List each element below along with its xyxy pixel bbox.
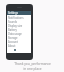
staticText: Sounds: [8, 20, 18, 24]
staticText: Data usage: [8, 32, 22, 36]
button[interactable]: Sounds: [7, 20, 31, 24]
button[interactable]: About: [7, 44, 31, 48]
button[interactable]: Storage: [7, 36, 31, 40]
staticText: in one place: [23, 67, 42, 71]
staticText: Account: [8, 40, 18, 44]
button[interactable]: Display size: [7, 24, 31, 28]
button[interactable]: Settings: [7, 11, 31, 15]
button[interactable]: Account: [7, 40, 31, 44]
staticText: Display size: [8, 24, 23, 28]
button[interactable]: Data usage: [7, 32, 31, 36]
staticText: Settings: [8, 11, 18, 15]
staticText: Storage: [8, 36, 18, 40]
staticText: Battery: [8, 28, 17, 32]
staticText: Notifications: [8, 16, 24, 20]
staticText: About: [8, 44, 16, 48]
staticText: Thank you, performance: [14, 62, 51, 66]
button[interactable]: Battery: [7, 28, 31, 32]
button[interactable]: Notifications: [7, 16, 31, 20]
